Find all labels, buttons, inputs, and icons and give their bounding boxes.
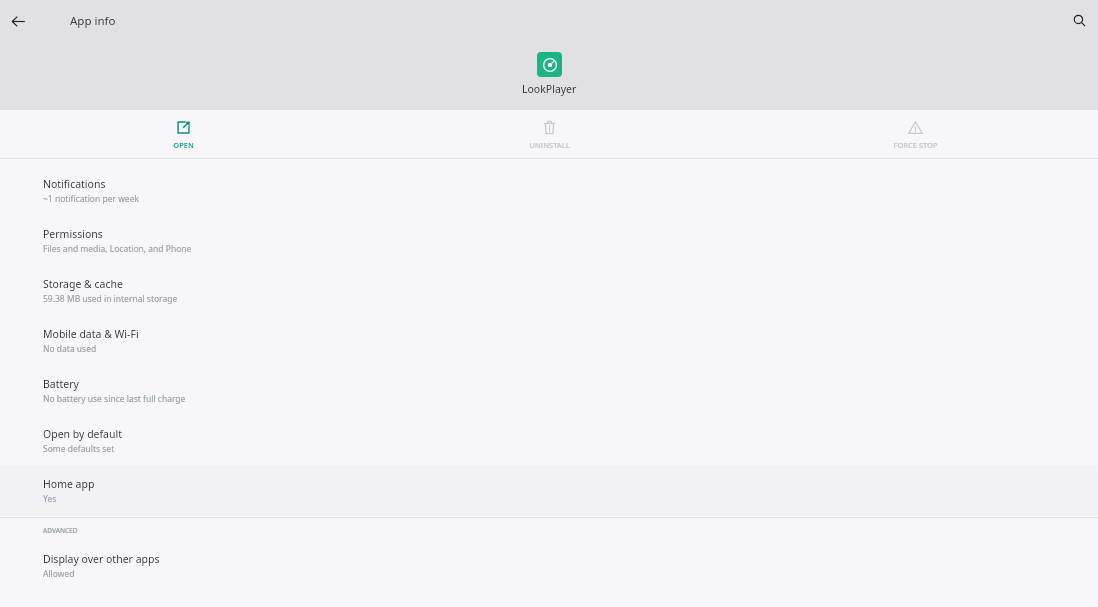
staticText: LookPlayer <box>522 82 577 96</box>
staticText: No data used <box>43 343 97 355</box>
staticText: OPEN <box>173 140 194 150</box>
button[interactable]: Open by default <box>0 416 1098 466</box>
staticText: Yes <box>43 493 57 505</box>
button[interactable]: OPEN <box>0 111 366 158</box>
staticText: Files and media, Location, and Phone <box>43 243 192 255</box>
button[interactable]: UNINSTALL <box>366 111 732 158</box>
staticText: Display over other apps <box>43 552 160 566</box>
staticText: No battery use since last full charge <box>43 393 186 405</box>
staticText: 59.38 MB used in internal storage <box>43 293 178 305</box>
staticText: Open by default <box>43 427 123 441</box>
button[interactable]: Permissions <box>0 216 1098 266</box>
button[interactable]: Mobile data & Wi-Fi <box>0 316 1098 366</box>
staticText: ADVANCED <box>43 526 78 535</box>
button[interactable]: Display over other apps <box>0 541 1098 591</box>
staticText: Battery <box>43 377 79 391</box>
button[interactable]: Storage & cache <box>0 266 1098 316</box>
staticText: FORCE STOP <box>893 140 938 150</box>
button[interactable]: Home app <box>0 466 1098 516</box>
button[interactable]: Back <box>4 7 32 35</box>
staticText: App info <box>70 13 116 29</box>
staticText: Mobile data & Wi-Fi <box>43 327 139 341</box>
button[interactable]: Search <box>1066 7 1092 33</box>
staticText: Storage & cache <box>43 277 123 291</box>
staticText: UNINSTALL <box>529 140 570 150</box>
button[interactable]: FORCE STOP <box>732 111 1098 158</box>
staticText: Allowed <box>43 568 75 580</box>
button[interactable]: Notifications <box>0 166 1098 216</box>
staticText: Permissions <box>43 227 103 241</box>
staticText: Some defaults set <box>43 443 115 455</box>
staticText: Notifications <box>43 177 106 191</box>
staticText: ~1 notification per week <box>43 193 139 205</box>
staticText: Home app <box>43 477 95 491</box>
button[interactable]: Battery <box>0 366 1098 416</box>
